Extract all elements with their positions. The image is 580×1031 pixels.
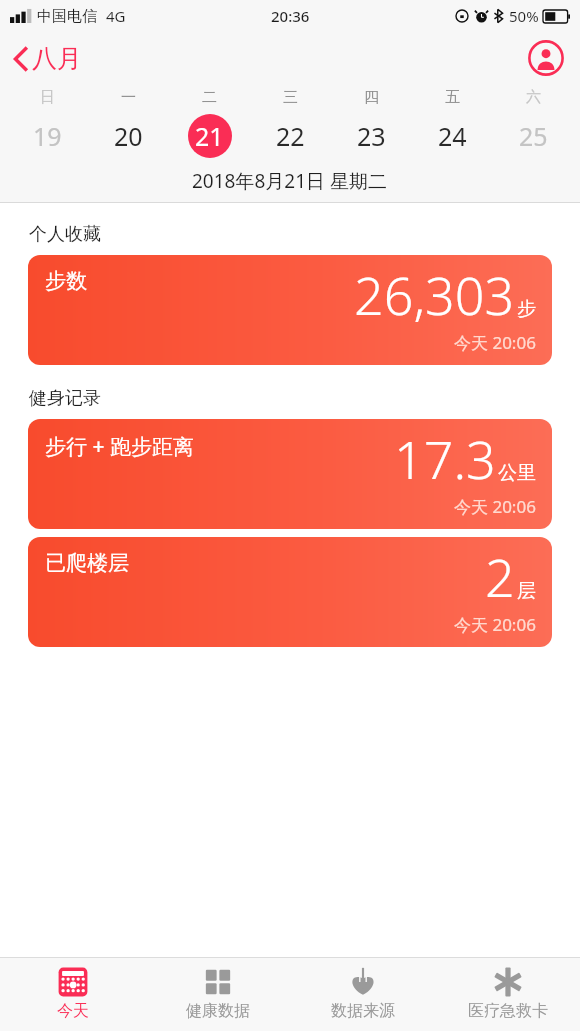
staticText: 24 xyxy=(438,119,467,153)
button[interactable]: 数据来源 xyxy=(290,958,435,1031)
staticText: 健身记录 xyxy=(29,387,101,410)
staticText: 个人收藏 xyxy=(29,223,101,246)
staticText: 17.3 xyxy=(394,423,496,494)
staticText: 步行 + 跑步距离 xyxy=(45,432,194,461)
button[interactable]: 25 xyxy=(493,110,574,162)
staticText: 四 xyxy=(364,88,379,107)
button[interactable]: 今天 xyxy=(0,958,145,1031)
staticText: 21 xyxy=(195,119,224,153)
button[interactable]: 八月 xyxy=(0,37,94,80)
button[interactable]: 健康数据 xyxy=(145,958,290,1031)
staticText: 今天 20:06 xyxy=(454,331,536,354)
staticText: 二 xyxy=(202,88,217,107)
staticText: 中国电信 xyxy=(37,7,97,26)
button[interactable]: Profile xyxy=(524,36,568,80)
staticText: 数据来源 xyxy=(331,1001,395,1021)
staticText: 五 xyxy=(445,88,460,107)
staticText: 三 xyxy=(283,88,298,107)
staticText: 26,303 xyxy=(354,259,515,330)
staticText: 2018年8月21日 星期二 xyxy=(192,168,388,194)
staticText: 医疗急救卡 xyxy=(468,1001,548,1021)
staticText: 今天 20:06 xyxy=(454,495,536,518)
button[interactable]: 24 xyxy=(412,110,493,162)
staticText: 公里 xyxy=(498,461,536,485)
staticText: 层 xyxy=(517,579,536,603)
button[interactable]: 23 xyxy=(331,110,412,162)
button[interactable]: 已爬楼层 xyxy=(28,537,552,647)
staticText: 20:36 xyxy=(271,6,310,26)
button[interactable]: 20 xyxy=(88,110,169,162)
staticText: 步数 xyxy=(45,268,87,294)
staticText: 八月 xyxy=(32,43,82,74)
button[interactable]: 21 xyxy=(169,110,250,162)
staticText: 一 xyxy=(121,88,136,107)
staticText: 已爬楼层 xyxy=(45,550,129,576)
staticText: 步 xyxy=(517,297,536,321)
button[interactable]: 步数 xyxy=(28,255,552,365)
staticText: 23 xyxy=(357,119,386,153)
staticText: 25 xyxy=(519,119,548,153)
staticText: 健康数据 xyxy=(186,1001,250,1021)
button[interactable]: 19 xyxy=(6,110,88,162)
staticText: 4G xyxy=(106,6,126,26)
staticText: 今天 20:06 xyxy=(454,613,536,636)
button[interactable]: 步行 + 跑步距离 xyxy=(28,419,552,529)
staticText: 2 xyxy=(485,541,515,612)
button[interactable]: 22 xyxy=(250,110,331,162)
staticText: 19 xyxy=(33,119,62,153)
staticText: 六 xyxy=(526,88,541,107)
staticText: 今天 xyxy=(57,1001,89,1021)
staticText: 日 xyxy=(40,88,55,107)
staticText: 22 xyxy=(276,119,305,153)
button[interactable]: 医疗急救卡 xyxy=(435,958,580,1031)
staticText: 50% xyxy=(509,6,539,26)
staticText: 20 xyxy=(114,119,143,153)
